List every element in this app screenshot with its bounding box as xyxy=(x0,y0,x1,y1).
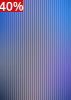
staticText: 40% xyxy=(0,0,24,14)
